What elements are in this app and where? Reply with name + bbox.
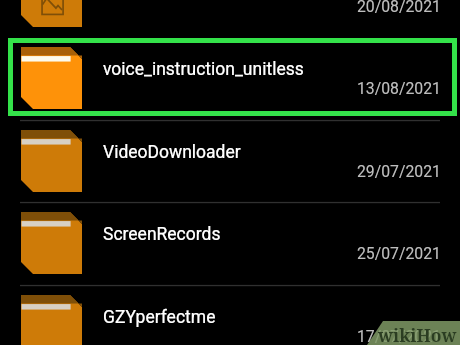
staticText: VideoDownloader: [103, 142, 241, 163]
button[interactable]: GZYperfectme: [0, 284, 460, 345]
staticText: 29/07/2021: [0, 162, 441, 181]
staticText: GZYperfectme: [103, 307, 216, 328]
button[interactable]: Screenshots: [0, 0, 460, 37]
staticText: voice_instruction_unitless: [103, 59, 304, 80]
button[interactable]: VideoDownloader: [0, 119, 460, 202]
staticText: 20/08/2021: [0, 0, 441, 16]
staticText: ScreenRecords: [103, 224, 221, 245]
staticText: 25/07/2021: [0, 244, 441, 263]
button[interactable]: voice_instruction_unitless: [0, 36, 460, 119]
staticText: 17/07/2021: [0, 327, 441, 345]
staticText: 13/08/2021: [0, 79, 441, 98]
staticText: wikiHow: [378, 323, 457, 345]
button[interactable]: ScreenRecords: [0, 201, 460, 284]
